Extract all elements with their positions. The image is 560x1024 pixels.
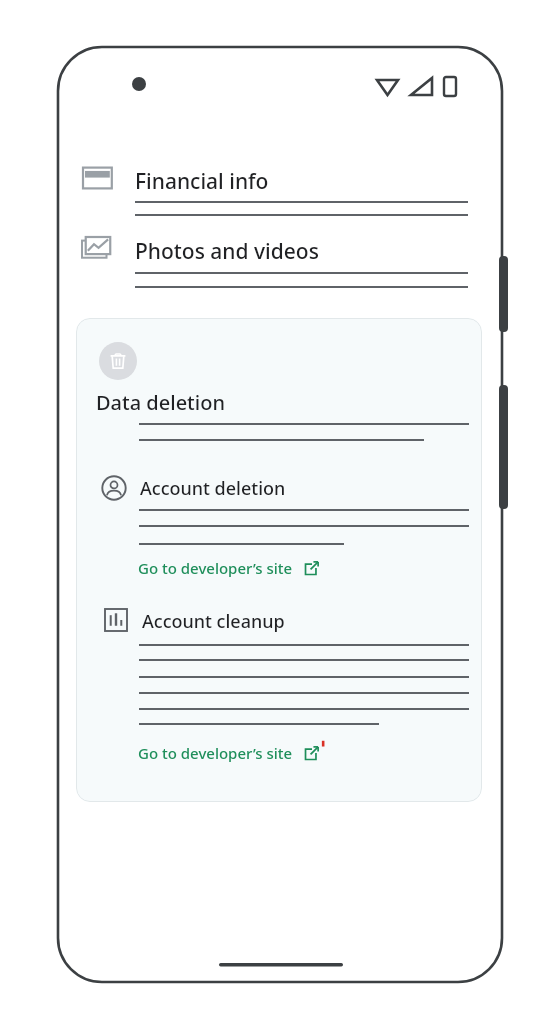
other: Data deletion	[99, 342, 137, 380]
staticText: Account cleanup	[142, 609, 285, 634]
other: Account cleanup	[104, 608, 128, 632]
staticText: Financial info	[135, 167, 269, 196]
staticText: Photos and videos	[135, 237, 319, 266]
staticText: Account deletion	[140, 476, 286, 501]
staticText: Data deletion	[96, 389, 225, 416]
staticText: Go to developer’s site	[138, 743, 293, 763]
button[interactable]: Go to developer’s site	[138, 558, 321, 578]
other: Account deletion	[101, 475, 127, 501]
button[interactable]: Go to developer’s site	[138, 743, 321, 763]
staticText: Go to developer’s site	[138, 558, 293, 578]
